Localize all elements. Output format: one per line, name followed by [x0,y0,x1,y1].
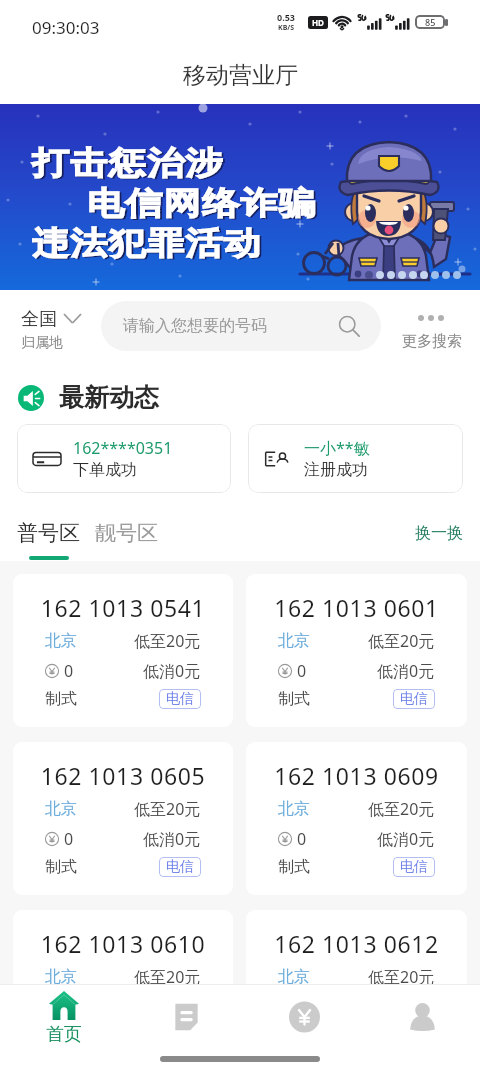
staticText: 制式 [45,689,77,709]
button[interactable]: 请输入您想要的号码 [101,301,381,351]
staticText: 低消0元 [143,996,201,1018]
staticText: 电信 [400,690,428,708]
staticText: 电信 [400,1026,428,1044]
staticText: 首页 [46,1023,82,1046]
button[interactable]: 全国 [21,308,63,331]
staticText: 低消0元 [143,660,201,682]
staticText: 低至20元 [368,966,435,988]
staticText: 北京 [278,967,310,987]
staticText: 一小**敏 [304,437,370,459]
staticText: 电信 [166,858,194,876]
staticText: 85 [425,16,436,28]
staticText: 制式 [278,857,310,877]
staticText: 低至20元 [368,798,435,820]
button[interactable]: 162 1013 0605 [13,742,233,895]
button[interactable]: 162 1013 0612 [246,910,467,1063]
staticText: 制式 [278,689,310,709]
staticText: 162 1013 0610 [13,928,233,959]
staticText: 电信网络诈骗 [87,183,317,223]
button[interactable]: 更多搜索 [402,312,462,331]
staticText: 注册成功 [304,460,368,480]
staticText: 北京 [278,799,310,819]
button[interactable]: 162 1013 0601 [246,574,467,727]
staticText: 低消0元 [377,996,435,1018]
staticText: 0 [64,660,74,682]
staticText: 打击惩治涉 [34,145,226,185]
button[interactable]: 162 1013 0610 [13,910,233,1063]
staticText: 162 1013 0601 [246,592,467,623]
staticText: 0 [297,996,307,1018]
staticText: 电信 [166,1026,194,1044]
staticText: 低消0元 [377,660,435,682]
staticText: 162 1013 0605 [13,760,233,791]
staticText: 全国 [21,308,57,331]
button[interactable]: 首页 [0,985,120,1054]
staticText: 制式 [278,1025,310,1045]
button[interactable]: 靓号区 [95,520,158,546]
staticText: 制式 [45,1025,77,1045]
staticText: 09:30:03 [32,16,100,39]
staticText: 制式 [45,857,77,877]
staticText: 北京 [45,799,77,819]
staticText: 162 1013 0612 [246,928,467,959]
button[interactable]: 162****0351 [17,424,231,493]
button[interactable]: 162 1013 0541 [13,574,233,727]
button[interactable]: 162 1013 0609 [246,742,467,895]
staticText: 北京 [45,967,77,987]
staticText: 北京 [45,631,77,651]
staticText: 电信 [400,858,428,876]
staticText: 162 1013 0609 [246,760,467,791]
button[interactable]: 我的 [360,985,480,1054]
staticText: 低至20元 [134,630,201,652]
staticText: 0.53 [277,11,295,23]
button[interactable]: 换一换 [415,523,463,543]
button[interactable]: 订单 [120,985,240,1054]
staticText: 最新动态 [59,382,159,413]
button[interactable]: 普号区 [17,520,80,560]
staticText: 0 [297,828,307,850]
button[interactable]: 费用 [240,985,360,1054]
staticText: 低至20元 [368,630,435,652]
staticText: 靓号区 [95,520,158,546]
staticText: KB/S [278,23,295,33]
staticText: 162 1013 0541 [13,592,233,623]
staticText: 低至20元 [134,966,201,988]
staticText: 0 [64,996,74,1018]
staticText: 低至20元 [134,798,201,820]
staticText: HD [312,17,324,28]
staticText: 更多搜索 [402,332,462,351]
staticText: 低消0元 [143,828,201,850]
staticText: 下单成功 [73,460,137,480]
staticText: 0 [297,660,307,682]
button[interactable]: 一小**敏 [248,424,463,493]
staticText: 162****0351 [73,437,173,459]
staticText: 归属地 [21,334,63,352]
staticText: 北京 [278,631,310,651]
staticText: 0 [64,828,74,850]
staticText: 普号区 [17,520,80,546]
staticText: 电信 [166,690,194,708]
staticText: 违法犯罪活动 [32,223,262,263]
staticText: 电信网络诈骗 [89,185,319,225]
staticText: 低消0元 [377,828,435,850]
staticText: 违法犯罪活动 [34,225,264,265]
staticText: 移动营业厅 [183,61,298,90]
staticText: 换一换 [415,523,463,543]
staticText: 打击惩治涉 [32,143,224,183]
staticText: 请输入您想要的号码 [123,316,267,336]
